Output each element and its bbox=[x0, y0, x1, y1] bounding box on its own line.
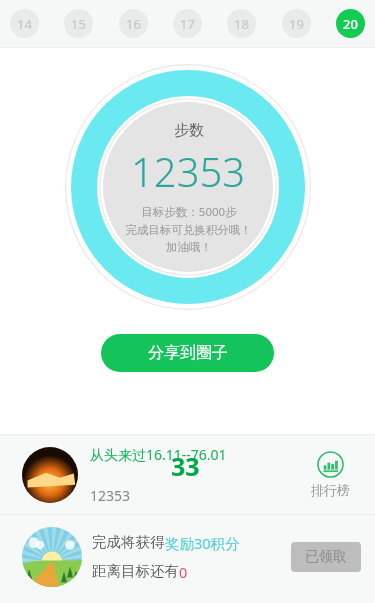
staticText: 16 bbox=[126, 15, 141, 33]
button[interactable]: 18 bbox=[227, 9, 256, 38]
staticText: 18 bbox=[234, 15, 249, 33]
staticText: 完成目标可兑换积分哦！ bbox=[125, 223, 252, 237]
button[interactable]: 完成将获得 bbox=[0, 515, 375, 599]
button[interactable]: 19 bbox=[282, 9, 311, 38]
staticText: 17 bbox=[180, 15, 195, 33]
button[interactable]: 16 bbox=[119, 9, 148, 38]
staticText: 分享到圈子 bbox=[148, 343, 228, 363]
staticText: 14 bbox=[17, 15, 32, 33]
staticText: 0 bbox=[179, 562, 188, 582]
staticText: 20 bbox=[343, 15, 358, 33]
staticText: 目标步数：5000步 bbox=[141, 204, 237, 220]
button[interactable]: 分享到圈子 bbox=[101, 334, 274, 372]
staticText: 15 bbox=[71, 15, 86, 33]
staticText: 奖励30积分 bbox=[165, 533, 240, 553]
button[interactable]: 已领取 bbox=[291, 542, 361, 572]
button[interactable]: 15 bbox=[64, 9, 93, 38]
button[interactable]: 排行榜 bbox=[299, 451, 361, 498]
staticText: 从头来过16.11--76.01 bbox=[90, 445, 227, 464]
staticText: 加油哦！ bbox=[166, 240, 212, 254]
button[interactable]: 20 bbox=[336, 9, 365, 38]
button[interactable]: 从头来过16.11--76.01 bbox=[0, 435, 375, 514]
staticText: 12353 bbox=[90, 486, 131, 505]
staticText: 12353 bbox=[131, 144, 246, 198]
staticText: 完成将获得 bbox=[92, 533, 165, 551]
staticText: 已领取 bbox=[305, 548, 347, 566]
staticText: 排行榜 bbox=[311, 482, 350, 498]
staticText: 距离目标还有 bbox=[92, 562, 179, 580]
button[interactable]: 14 bbox=[10, 9, 39, 38]
staticText: 19 bbox=[289, 15, 304, 33]
staticText: 33 bbox=[171, 449, 200, 483]
staticText: 步数 bbox=[174, 121, 204, 140]
button[interactable]: 17 bbox=[173, 9, 202, 38]
